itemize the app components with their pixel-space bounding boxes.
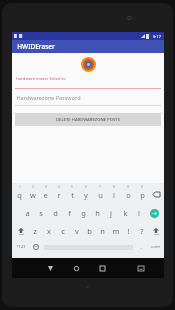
button[interactable]: Backspace [149,185,163,204]
staticText: k [123,208,128,218]
button[interactable]: g [76,204,90,222]
staticText: x [47,226,51,236]
button[interactable]: j [104,204,118,222]
button[interactable]: l [132,204,146,222]
button[interactable]: ?123 [13,240,29,254]
staticText: 3 [45,185,47,189]
button[interactable]: 6 [79,185,93,204]
staticText: d [53,208,58,218]
staticText: j [110,208,112,218]
staticText: v [75,226,79,236]
button[interactable]: .com [146,240,163,254]
button[interactable]: b [83,222,96,240]
staticText: ! [127,226,130,236]
button[interactable]: Enter [146,204,163,222]
button[interactable]: d [48,204,62,222]
button[interactable]: 4 [52,185,65,204]
staticText: p [140,190,145,200]
staticText: 6 [85,185,87,189]
staticText: ?123 [16,244,26,250]
button[interactable]: 2 [26,185,39,204]
button[interactable]: s [34,204,48,222]
button[interactable]: 5 [65,185,79,204]
button[interactable]: c [56,222,70,240]
button[interactable]: Home [63,258,89,278]
staticText: e [43,190,48,200]
button[interactable]: ? [135,222,148,240]
button[interactable]: 1 [13,185,26,204]
staticText: 1 [19,185,21,189]
staticText: ? [140,226,144,236]
staticText: l [138,208,140,218]
button[interactable]: m [109,222,122,240]
staticText: 4 [58,185,60,189]
button[interactable]: Shift [13,222,28,240]
staticText: 0 [141,185,143,189]
staticText: 9 [127,185,129,189]
staticText: b [87,226,92,236]
button[interactable]: h [90,204,104,222]
button[interactable]: n [96,222,109,240]
staticText: c [61,226,65,236]
staticText: w [30,190,36,200]
button[interactable]: 8 [107,185,121,204]
staticText: t [71,190,74,200]
staticText: 8 [113,185,115,189]
button[interactable]: v [70,222,83,240]
staticText: 5 [71,185,73,189]
staticText: u [98,190,103,200]
button[interactable]: 9 [121,185,135,204]
button[interactable]: Emoji [29,240,42,254]
staticText: i [113,190,115,200]
staticText: o [126,190,131,200]
staticText: 2 [32,185,34,189]
button[interactable]: 0 [135,185,149,204]
button[interactable]: Hide keyboard [128,258,154,278]
staticText: h [95,208,100,218]
staticText: y [84,190,88,200]
button[interactable]: DELETE HARDWAREZONE POSTS [15,113,161,126]
staticText: . [140,243,142,251]
staticText: g [81,208,86,218]
staticText: hardware eraser failed to [16,76,66,82]
staticText: r [57,190,61,200]
staticText: 9:17 [153,34,161,39]
button[interactable]: x [42,222,56,240]
staticText: z [33,226,37,236]
button[interactable]: ! [122,222,135,240]
button[interactable]: Back [37,258,63,278]
button[interactable]: 3 [39,185,52,204]
staticText: s [39,208,43,218]
staticText: DELETE HARDWAREZONE POSTS [56,117,120,123]
staticText: Hardwarezone Password [16,94,81,101]
button[interactable]: f [62,204,76,222]
button[interactable]: a [20,204,34,222]
button[interactable]: 7 [93,185,107,204]
button[interactable]: z [28,222,42,240]
staticText: 7 [99,185,101,189]
staticText: m [112,226,120,236]
button[interactable]: Recents [89,258,115,278]
staticText: a [25,208,30,218]
button[interactable]: k [118,204,132,222]
staticText: .com [150,244,160,250]
button[interactable]: Shift [148,222,163,240]
staticText: HWIDEraser [17,42,55,51]
staticText: f [68,208,71,218]
staticText: q [17,190,22,200]
staticText: n [100,226,105,236]
